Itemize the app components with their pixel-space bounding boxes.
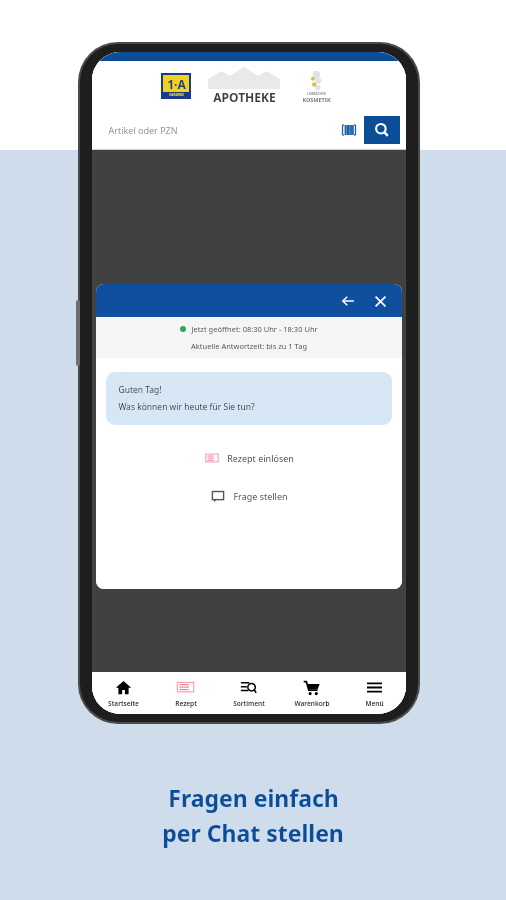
staticText: KOSMETIK bbox=[302, 96, 331, 103]
button[interactable]: Frage stellen bbox=[106, 481, 392, 511]
button[interactable]: Rezept einlösen bbox=[106, 443, 392, 473]
staticText: Was können wir heute für Sie tun? bbox=[118, 401, 255, 413]
button[interactable]: Warenkorb bbox=[280, 672, 343, 714]
staticText: per Chat stellen bbox=[162, 817, 344, 848]
staticText: Guten Tag! bbox=[118, 384, 162, 396]
button[interactable]: Schließen bbox=[368, 289, 392, 313]
staticText: Warenkorb bbox=[294, 699, 330, 708]
button[interactable]: Startseite bbox=[92, 672, 154, 714]
other: Barcode scannen bbox=[340, 121, 358, 139]
staticText: Frage stellen bbox=[233, 490, 288, 502]
staticText: Aktuelle Antwortzeit: bis zu 1 Tag bbox=[191, 341, 307, 351]
staticText: Menü bbox=[365, 699, 384, 708]
staticText: Rezept einlösen bbox=[227, 452, 294, 464]
button[interactable]: Menü bbox=[343, 672, 406, 714]
staticText: GESUND bbox=[169, 92, 184, 97]
button[interactable]: Sortiment bbox=[217, 672, 280, 714]
staticText: 1·A bbox=[167, 76, 186, 92]
staticText: Artikel oder PZN bbox=[108, 124, 178, 136]
staticText: Jetzt geöffnet: 08:30 Uhr - 18:30 Uhr bbox=[191, 324, 318, 334]
staticText: APOTHEKE bbox=[213, 89, 276, 105]
staticText: Startseite bbox=[108, 699, 139, 708]
button[interactable]: Suchen bbox=[364, 116, 400, 144]
staticText: LIMBACHER bbox=[307, 92, 326, 96]
button[interactable]: Rezept bbox=[154, 672, 217, 714]
button[interactable]: Artikel oder PZN bbox=[98, 114, 400, 146]
staticText: Rezept bbox=[175, 699, 197, 708]
staticText: Fragen einfach bbox=[168, 782, 339, 813]
staticText: Sortiment bbox=[233, 699, 265, 708]
button[interactable]: Zurück bbox=[336, 289, 360, 313]
